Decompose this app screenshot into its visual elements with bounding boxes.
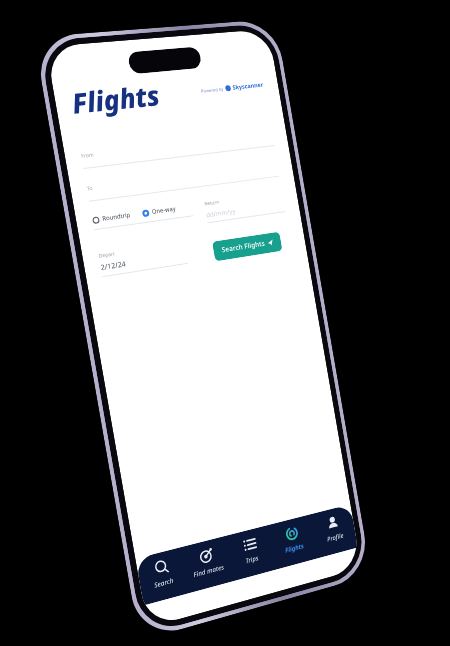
button[interactable]: Roundtrip xyxy=(92,210,133,224)
button[interactable]: Trips xyxy=(226,525,276,581)
staticText: From xyxy=(81,151,95,160)
staticText: Flights xyxy=(69,76,163,122)
staticText: Search xyxy=(153,575,174,590)
other: Find mates xyxy=(198,546,215,565)
other: Search xyxy=(153,558,170,577)
staticText: dd/mm/yy xyxy=(206,206,236,219)
staticText: Roundtrip xyxy=(102,211,131,223)
staticText: Return xyxy=(204,199,220,208)
button[interactable]: Flights xyxy=(269,514,318,569)
staticText: Search Flights xyxy=(221,239,266,255)
other: Flights xyxy=(284,525,300,542)
other: Profile xyxy=(325,514,340,532)
staticText: Flights xyxy=(284,541,304,555)
staticText: Find mates xyxy=(193,562,225,579)
staticText: Powered by xyxy=(200,86,224,94)
staticText: Skyscanner xyxy=(232,81,264,92)
staticText: 2/12/24 xyxy=(100,259,127,273)
button[interactable]: One-way xyxy=(142,204,178,217)
staticText: Profile xyxy=(326,530,345,544)
staticText: Trips xyxy=(245,553,260,565)
staticText: One-way xyxy=(151,205,176,216)
button[interactable]: Profile xyxy=(310,504,358,558)
button[interactable]: Search Flights xyxy=(212,232,283,261)
button[interactable]: Search xyxy=(135,547,190,606)
button[interactable]: Find mates xyxy=(182,536,234,593)
other: Trips xyxy=(242,535,258,554)
staticText: To xyxy=(86,185,94,193)
staticText: Depart xyxy=(98,250,116,260)
